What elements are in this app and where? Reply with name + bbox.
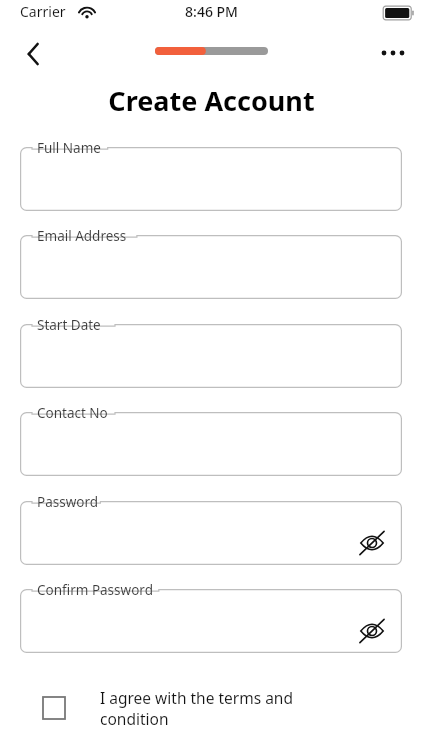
staticText: Password <box>37 493 99 511</box>
button[interactable]: Back <box>12 36 52 72</box>
button[interactable]: Contact No <box>20 412 402 476</box>
staticText: Full Name <box>37 139 101 157</box>
staticText: Contact No <box>37 404 108 422</box>
staticText: Carrier <box>20 2 66 21</box>
staticText: I agree with the terms and condition <box>100 687 355 730</box>
button[interactable]: I agree with the terms and condition <box>20 686 402 744</box>
button[interactable]: More options <box>374 38 412 68</box>
button[interactable]: Show password <box>358 529 386 557</box>
staticText: Email Address <box>37 227 127 245</box>
staticText: Create Account <box>108 82 315 119</box>
button[interactable]: Full Name <box>20 147 402 211</box>
button[interactable]: Email Address <box>20 235 402 299</box>
button[interactable]: Password <box>20 501 402 565</box>
button[interactable]: Show password <box>358 617 386 645</box>
button[interactable]: Start Date <box>20 324 402 388</box>
staticText: Confirm Password <box>37 581 153 599</box>
staticText: Start Date <box>37 316 101 334</box>
button[interactable]: Confirm Password <box>20 589 402 653</box>
staticText: 8:46 PM <box>185 2 238 21</box>
